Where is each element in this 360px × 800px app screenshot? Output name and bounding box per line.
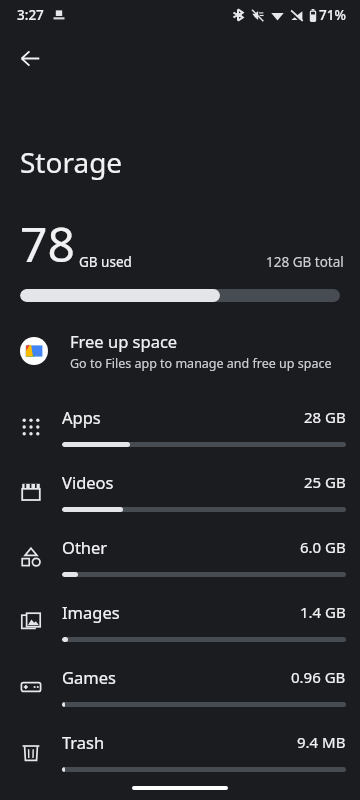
staticText: Trash bbox=[62, 731, 105, 753]
staticText: Videos bbox=[62, 471, 114, 493]
staticText: Go to Files app to manage and free up sp… bbox=[70, 355, 332, 372]
staticText: Games bbox=[62, 666, 116, 688]
button[interactable]: Apps bbox=[0, 394, 360, 459]
staticText: GB used bbox=[79, 253, 132, 271]
staticText: Other bbox=[62, 536, 108, 558]
staticText: 0.96 GB bbox=[291, 667, 346, 687]
staticText: Apps bbox=[62, 406, 101, 428]
button[interactable]: Videos bbox=[0, 459, 360, 524]
staticText: Storage bbox=[20, 143, 123, 181]
button[interactable]: Trash bbox=[0, 719, 360, 784]
staticText: Free up space bbox=[70, 330, 178, 352]
staticText: Images bbox=[62, 601, 120, 623]
staticText: 71% bbox=[319, 6, 346, 24]
staticText: 78 bbox=[20, 211, 75, 276]
button[interactable]: Games bbox=[0, 654, 360, 719]
staticText: 9.4 MB bbox=[297, 732, 346, 752]
staticText: 3:27 bbox=[17, 6, 44, 24]
staticText: 25 GB bbox=[304, 472, 346, 492]
staticText: 28 GB bbox=[304, 407, 346, 427]
staticText: 128 GB total bbox=[266, 253, 344, 271]
button[interactable]: Back bbox=[8, 36, 52, 80]
button[interactable]: Other bbox=[0, 524, 360, 589]
button[interactable]: Free up space bbox=[0, 326, 360, 376]
staticText: 1.4 GB bbox=[300, 602, 346, 622]
staticText: 6.0 GB bbox=[300, 537, 346, 557]
button[interactable]: Images bbox=[0, 589, 360, 654]
